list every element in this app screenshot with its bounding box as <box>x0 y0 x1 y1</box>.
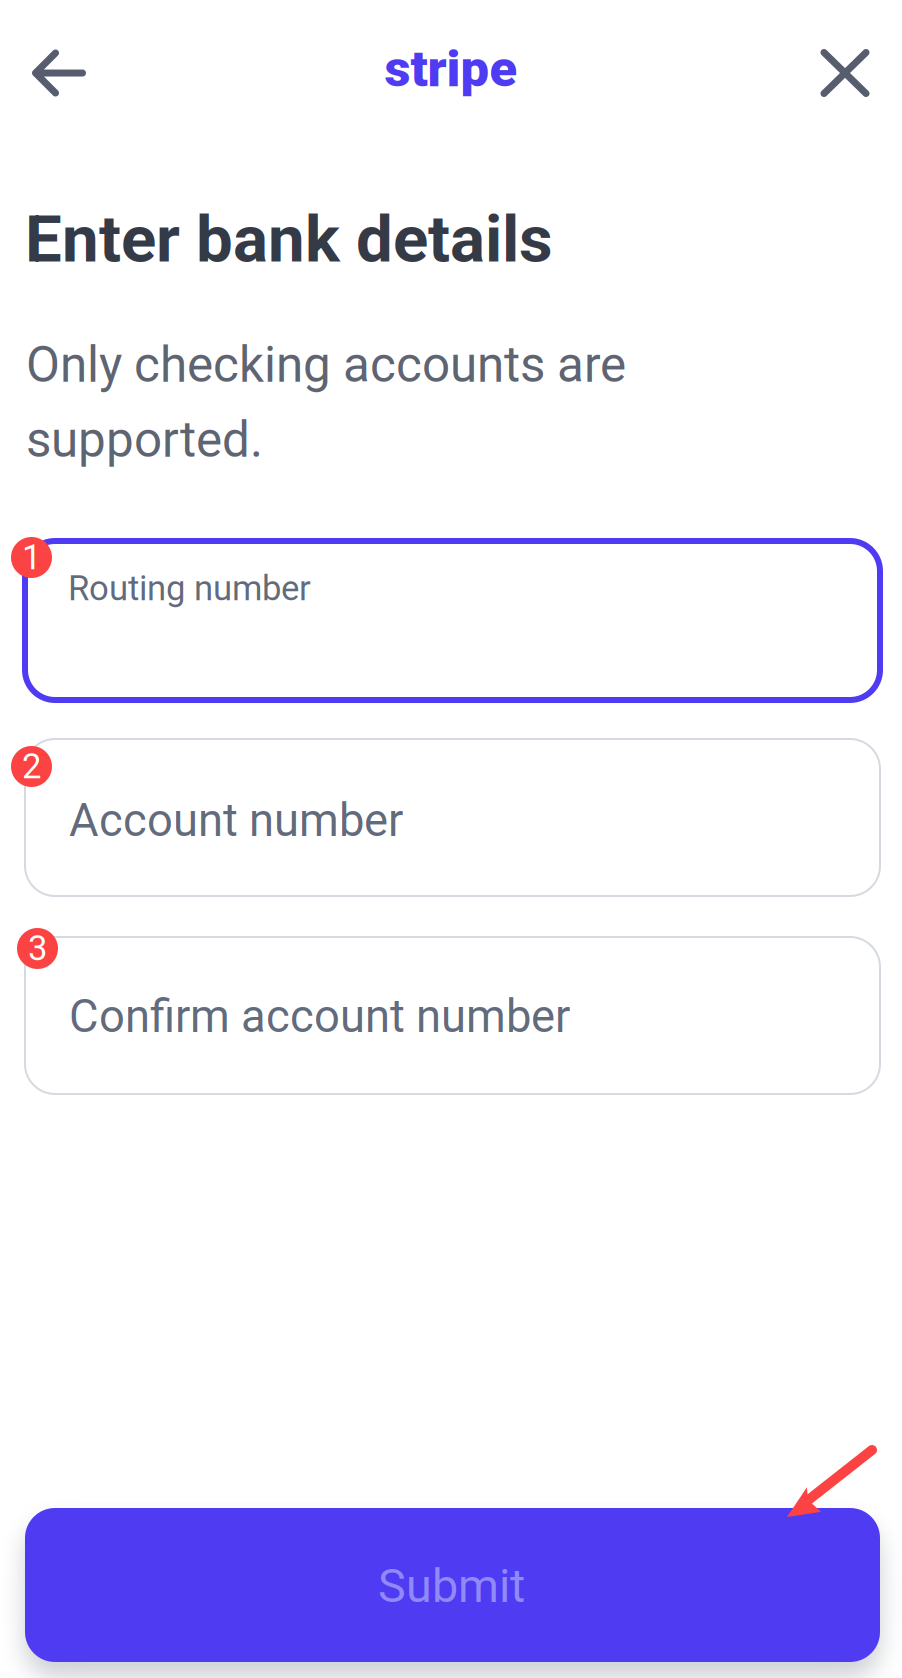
staticText: 1 <box>22 537 41 578</box>
staticText: Confirm account number <box>69 990 570 1043</box>
button[interactable]: Account number <box>25 739 880 896</box>
staticText: supported. <box>26 411 263 469</box>
button[interactable]: Confirm account number <box>25 937 880 1094</box>
button[interactable]: Close <box>786 14 902 132</box>
button[interactable]: Routing number <box>25 541 880 700</box>
staticText: Routing number <box>68 568 311 609</box>
staticText: Only checking accounts are <box>26 336 626 394</box>
staticText: Account number <box>69 794 403 847</box>
staticText: 2 <box>22 746 41 787</box>
button[interactable]: Submit <box>25 1508 880 1662</box>
staticText: stripe <box>384 39 517 99</box>
staticText: 3 <box>28 928 47 969</box>
button[interactable]: Back <box>0 14 118 132</box>
staticText: Enter bank details <box>25 201 553 278</box>
staticText: Submit <box>378 1559 525 1613</box>
